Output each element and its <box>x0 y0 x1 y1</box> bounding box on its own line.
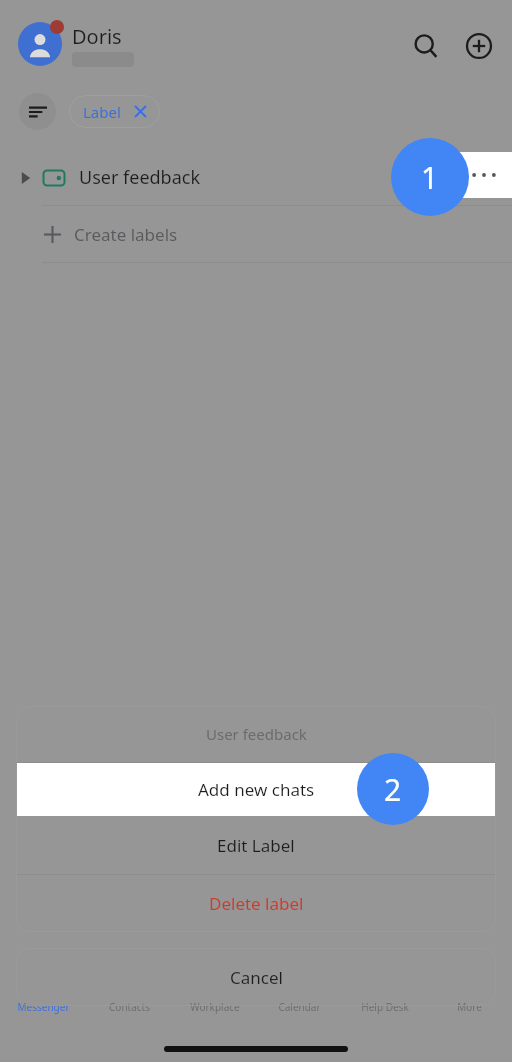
staticText: Messenger <box>17 1000 70 1014</box>
staticText: Create labels <box>74 223 178 246</box>
button[interactable]: Add new chats <box>16 763 496 816</box>
staticText: User feedback <box>206 724 307 744</box>
staticText: More <box>457 1000 482 1014</box>
button[interactable]: Workplace <box>172 996 257 1018</box>
staticText: 2 <box>384 769 402 810</box>
button[interactable]: Cancel <box>16 948 496 1006</box>
staticText: Add new chats <box>198 778 315 801</box>
button[interactable]: Profile avatar <box>18 22 62 66</box>
button[interactable]: Create labels <box>0 206 512 262</box>
button[interactable]: User feedback <box>0 150 512 205</box>
button[interactable]: Filter <box>19 93 56 130</box>
staticText: Doris <box>72 23 122 50</box>
staticText: Calendar <box>278 1000 321 1014</box>
staticText: 1 <box>421 157 439 198</box>
button[interactable]: Help Desk <box>342 996 427 1018</box>
button[interactable]: Label <box>69 95 160 128</box>
button[interactable]: Edit Label <box>16 816 496 874</box>
staticText: Cancel <box>230 966 283 989</box>
staticText: Label <box>83 102 121 122</box>
staticText: Workplace <box>190 1000 240 1014</box>
button[interactable]: Calendar <box>257 996 342 1018</box>
button[interactable]: Contacts <box>86 996 172 1018</box>
staticText: User feedback <box>79 165 201 190</box>
button[interactable]: Messenger <box>0 996 86 1018</box>
button[interactable]: More options <box>455 152 512 198</box>
button[interactable]: Delete label <box>16 875 496 932</box>
staticText: Help Desk <box>361 1000 409 1014</box>
button[interactable]: Add <box>459 26 499 66</box>
staticText: Contacts <box>109 1000 150 1014</box>
button[interactable]: Search <box>406 26 446 66</box>
button[interactable]: More <box>427 996 512 1018</box>
staticText: Edit Label <box>217 834 295 857</box>
staticText: Delete label <box>209 892 304 915</box>
